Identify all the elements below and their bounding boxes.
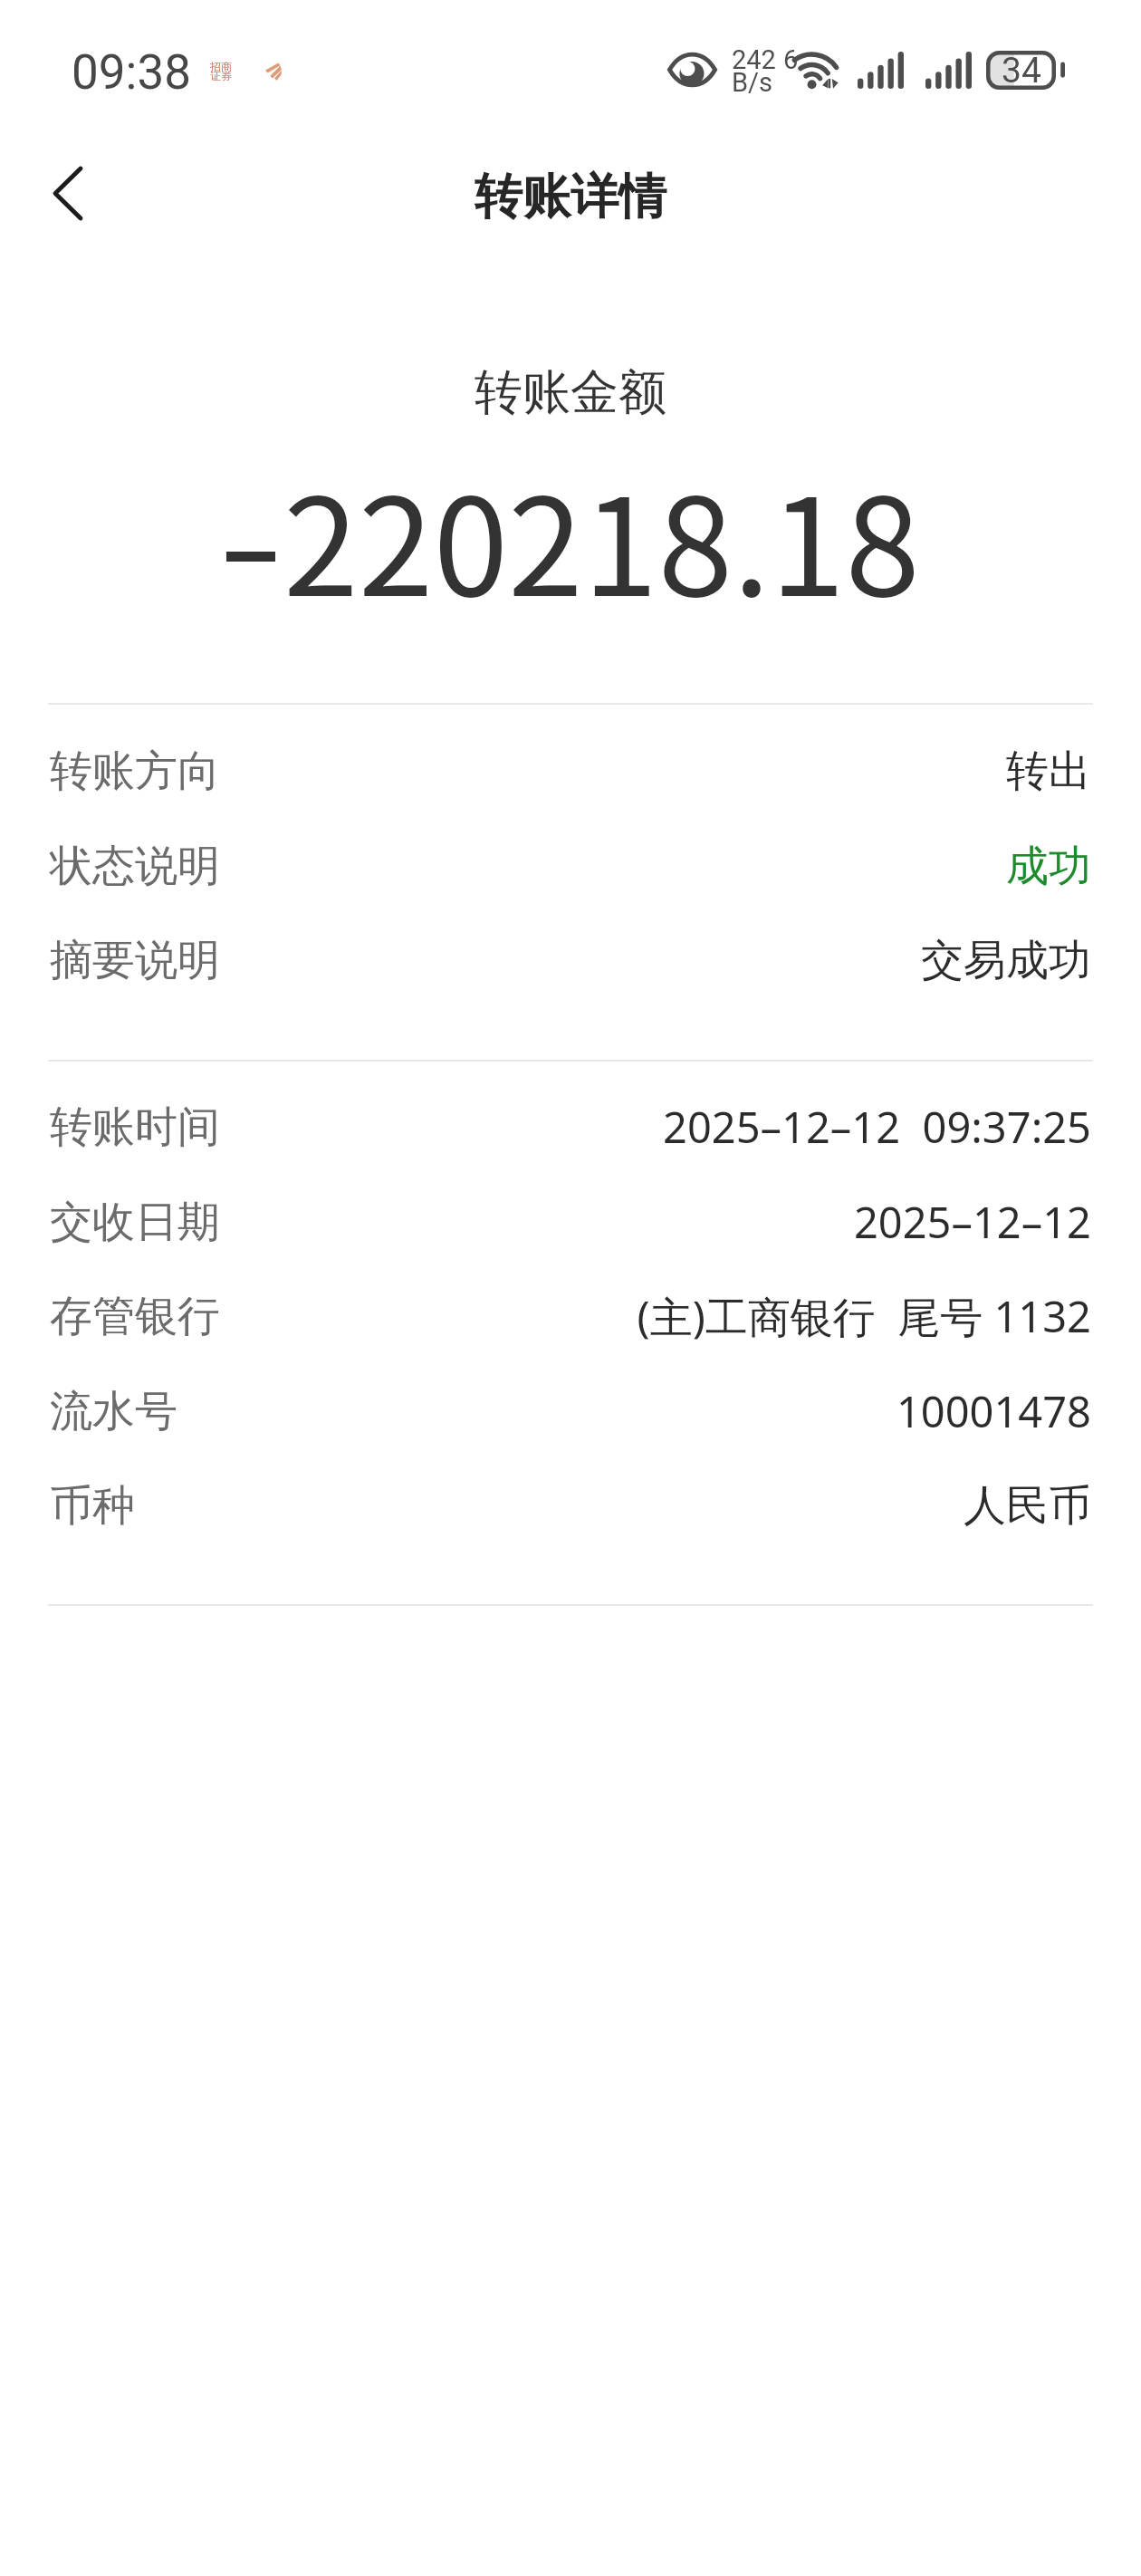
staticText: 成功 <box>1006 840 1091 893</box>
button[interactable]: Back <box>25 148 109 238</box>
button[interactable]: 状态说明 <box>0 819 1141 913</box>
staticText: 2025–12–12 <box>853 1193 1091 1251</box>
staticText: 转账金额 <box>0 362 1141 423</box>
staticText: 交易成功 <box>921 934 1091 987</box>
staticText: 09:38 <box>72 44 191 101</box>
button[interactable]: 币种 <box>0 1458 1141 1552</box>
staticText: 人民币 <box>964 1479 1091 1533</box>
staticText: 状态说明 <box>50 840 220 893</box>
staticText: 转账详情 <box>0 167 1141 227</box>
staticText: 币种 <box>50 1479 135 1533</box>
staticText: 转账方向 <box>50 745 220 798</box>
staticText: 2025–12–12 09:37:25 <box>662 1098 1091 1156</box>
button[interactable]: 摘要说明 <box>0 913 1141 1007</box>
staticText: 10001478 <box>896 1382 1091 1440</box>
button[interactable]: 交收日期 <box>0 1175 1141 1269</box>
button[interactable]: 流水号 <box>0 1364 1141 1458</box>
staticText: 6 <box>783 44 799 75</box>
staticText: 转账时间 <box>50 1101 220 1154</box>
staticText: 招商 证券 <box>210 60 232 83</box>
staticText: 摘要说明 <box>50 934 220 987</box>
staticText: (主)工商银行 尾号 1132 <box>637 1287 1091 1345</box>
staticText: 流水号 <box>50 1385 177 1438</box>
button[interactable]: 转账时间 <box>0 1080 1141 1174</box>
staticText: 交收日期 <box>50 1196 220 1249</box>
staticText: 220218.18 <box>283 439 920 635</box>
staticText: 242 B/s <box>732 44 777 98</box>
staticText: 34 <box>1002 50 1041 89</box>
staticText: 存管银行 <box>50 1290 220 1343</box>
button[interactable]: 转账方向 <box>0 724 1141 818</box>
staticText: 转出 <box>1006 745 1091 798</box>
button[interactable]: 存管银行 <box>0 1269 1141 1363</box>
